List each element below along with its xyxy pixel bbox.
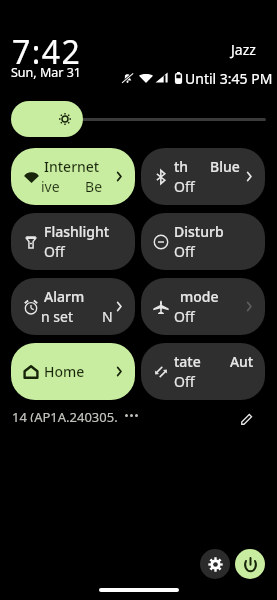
- staticText: tate Aut: [174, 352, 254, 371]
- staticText: 14 (AP1A.240305.: [12, 408, 118, 422]
- staticText: Until 3:45 PM: [185, 69, 273, 86]
- button[interactable]: tate Aut: [141, 343, 265, 400]
- button[interactable]: Internet: [11, 148, 135, 205]
- button[interactable]: Home: [11, 343, 135, 400]
- staticText: Disturb: [174, 222, 224, 241]
- staticText: ive Be: [41, 177, 103, 196]
- staticText: Off: [44, 242, 65, 261]
- button[interactable]: Edit tiles: [234, 406, 259, 431]
- staticText: Off: [174, 242, 195, 261]
- button[interactable]: Alarm: [11, 278, 135, 335]
- staticText: th Blue: [174, 157, 240, 176]
- staticText: Jazz: [231, 40, 256, 59]
- staticText: Home: [44, 362, 85, 381]
- staticText: 7:42: [12, 30, 82, 74]
- button[interactable]: Flashlight: [11, 213, 135, 270]
- staticText: Flashlight: [44, 222, 110, 241]
- button[interactable]: Disturb: [141, 213, 265, 270]
- button[interactable]: Power: [235, 549, 265, 579]
- staticText: Off: [174, 177, 195, 196]
- staticText: Off: [174, 307, 195, 326]
- staticText: Alarm: [44, 287, 85, 306]
- button[interactable]: Settings: [200, 549, 230, 579]
- button[interactable]: Brightness: [11, 101, 266, 137]
- staticText: Off: [174, 372, 195, 391]
- staticText: n set N: [41, 307, 112, 326]
- staticText: Sun, Mar 31: [11, 64, 81, 81]
- staticText: mode: [180, 287, 219, 306]
- staticText: Internet: [44, 157, 100, 176]
- button[interactable]: th Blue: [141, 148, 265, 205]
- button[interactable]: mode: [141, 278, 265, 335]
